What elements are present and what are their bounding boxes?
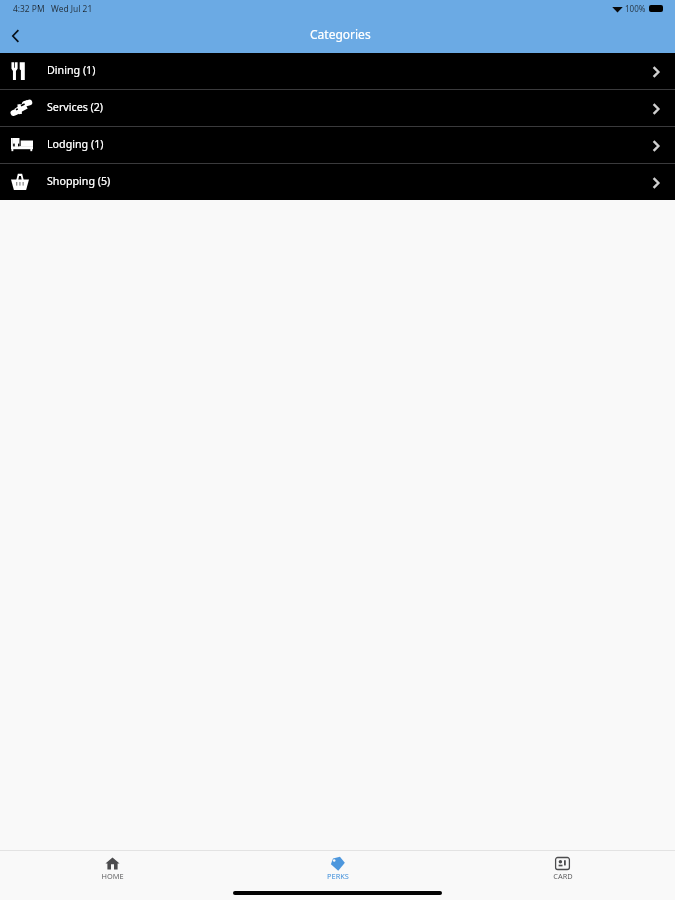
button[interactable]: Lodging (1): [0, 127, 675, 163]
staticText: CARD: [553, 871, 573, 881]
staticText: Lodging (1): [47, 137, 104, 152]
button[interactable]: PERKS: [225, 851, 450, 888]
staticText: 100%: [625, 3, 646, 14]
staticText: 4:32 PM Wed Jul 21: [13, 3, 93, 14]
staticText: HOME: [101, 871, 124, 881]
staticText: Dining (1): [47, 63, 96, 78]
button[interactable]: Dining (1): [0, 53, 675, 89]
button[interactable]: Back: [0, 19, 30, 53]
staticText: PERKS: [327, 871, 349, 881]
staticText: Services (2): [47, 100, 104, 115]
button[interactable]: Services (2): [0, 90, 675, 126]
staticText: Categories: [310, 26, 371, 42]
button[interactable]: Shopping (5): [0, 164, 675, 200]
button[interactable]: CARD: [450, 851, 675, 888]
staticText: Shopping (5): [47, 174, 111, 189]
button[interactable]: HOME: [0, 851, 225, 888]
